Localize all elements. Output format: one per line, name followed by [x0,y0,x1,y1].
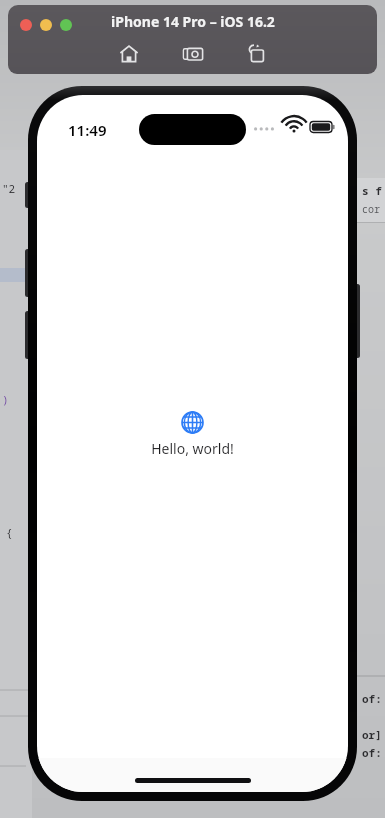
button[interactable]: Rotate [244,41,270,67]
button[interactable]: Zoom [60,19,72,31]
staticText: cor [362,202,380,216]
staticText: of: [362,691,382,706]
button[interactable]: Close [20,19,32,31]
staticText: "2 [2,181,16,196]
staticText: of: [362,745,382,760]
staticText: 11:49 [68,120,107,140]
staticText: ) [2,392,9,407]
staticText: s f [362,183,382,198]
button[interactable]: Minimize [40,19,52,31]
button[interactable]: Screenshot [180,41,206,67]
staticText: iPhone 14 Pro – iOS 16.2 [111,12,275,31]
other: Globe [181,411,204,434]
staticText: or] [362,727,382,742]
button[interactable]: Home [116,41,142,67]
staticText: Hello, world! [151,439,234,458]
staticText: { [6,525,13,540]
